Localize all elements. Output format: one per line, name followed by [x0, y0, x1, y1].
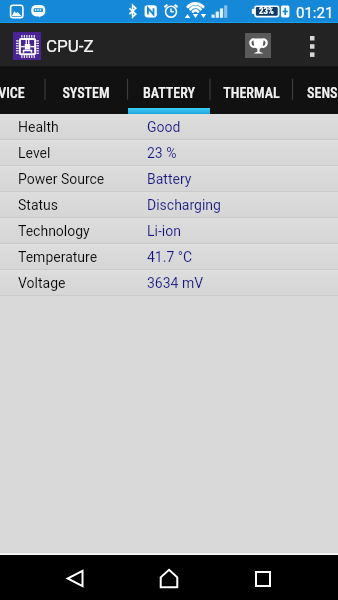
button[interactable]: Level — [0, 140, 338, 166]
button[interactable]: More options — [301, 31, 323, 61]
staticText: Battery — [147, 171, 192, 187]
staticText: 3634 mV — [147, 275, 204, 291]
button[interactable]: Home — [147, 555, 191, 600]
staticText: 23 % — [147, 145, 177, 161]
staticText: Power Source — [18, 171, 105, 187]
button[interactable]: Temperature — [0, 244, 338, 270]
staticText: BATTERY — [143, 85, 195, 101]
button[interactable]: Voltage — [0, 270, 338, 296]
staticText: DEVICE — [0, 85, 25, 101]
staticText: Voltage — [18, 275, 66, 291]
staticText: Health — [18, 119, 59, 135]
staticText: SENSORS — [307, 85, 338, 101]
button[interactable]: SENSORS — [307, 72, 338, 114]
button[interactable]: Recent apps — [241, 555, 285, 600]
staticText: 01:21 — [296, 4, 334, 22]
staticText: CPU-Z — [46, 36, 94, 56]
button[interactable]: Power Source — [0, 166, 338, 192]
button[interactable]: DEVICE — [0, 72, 25, 114]
staticText: Good — [147, 119, 181, 135]
staticText: Level — [18, 145, 51, 161]
button[interactable]: Status — [0, 192, 338, 218]
staticText: 41.7 °C — [147, 249, 193, 265]
staticText: Status — [18, 197, 59, 213]
staticText: Discharging — [147, 197, 221, 213]
staticText: SYSTEM — [62, 85, 110, 101]
button[interactable]: Benchmark — [245, 33, 271, 58]
button[interactable]: Technology — [0, 218, 338, 244]
button[interactable]: Health — [0, 114, 338, 140]
staticText: Temperature — [18, 249, 98, 265]
button[interactable]: THERMAL — [223, 72, 280, 114]
staticText: THERMAL — [223, 85, 280, 101]
button[interactable]: BATTERY — [143, 72, 195, 114]
button[interactable]: SYSTEM — [62, 72, 110, 114]
staticText: Li-ion — [147, 223, 181, 239]
staticText: 23% — [259, 6, 274, 17]
button[interactable]: Back — [53, 555, 97, 600]
staticText: Technology — [18, 223, 90, 239]
